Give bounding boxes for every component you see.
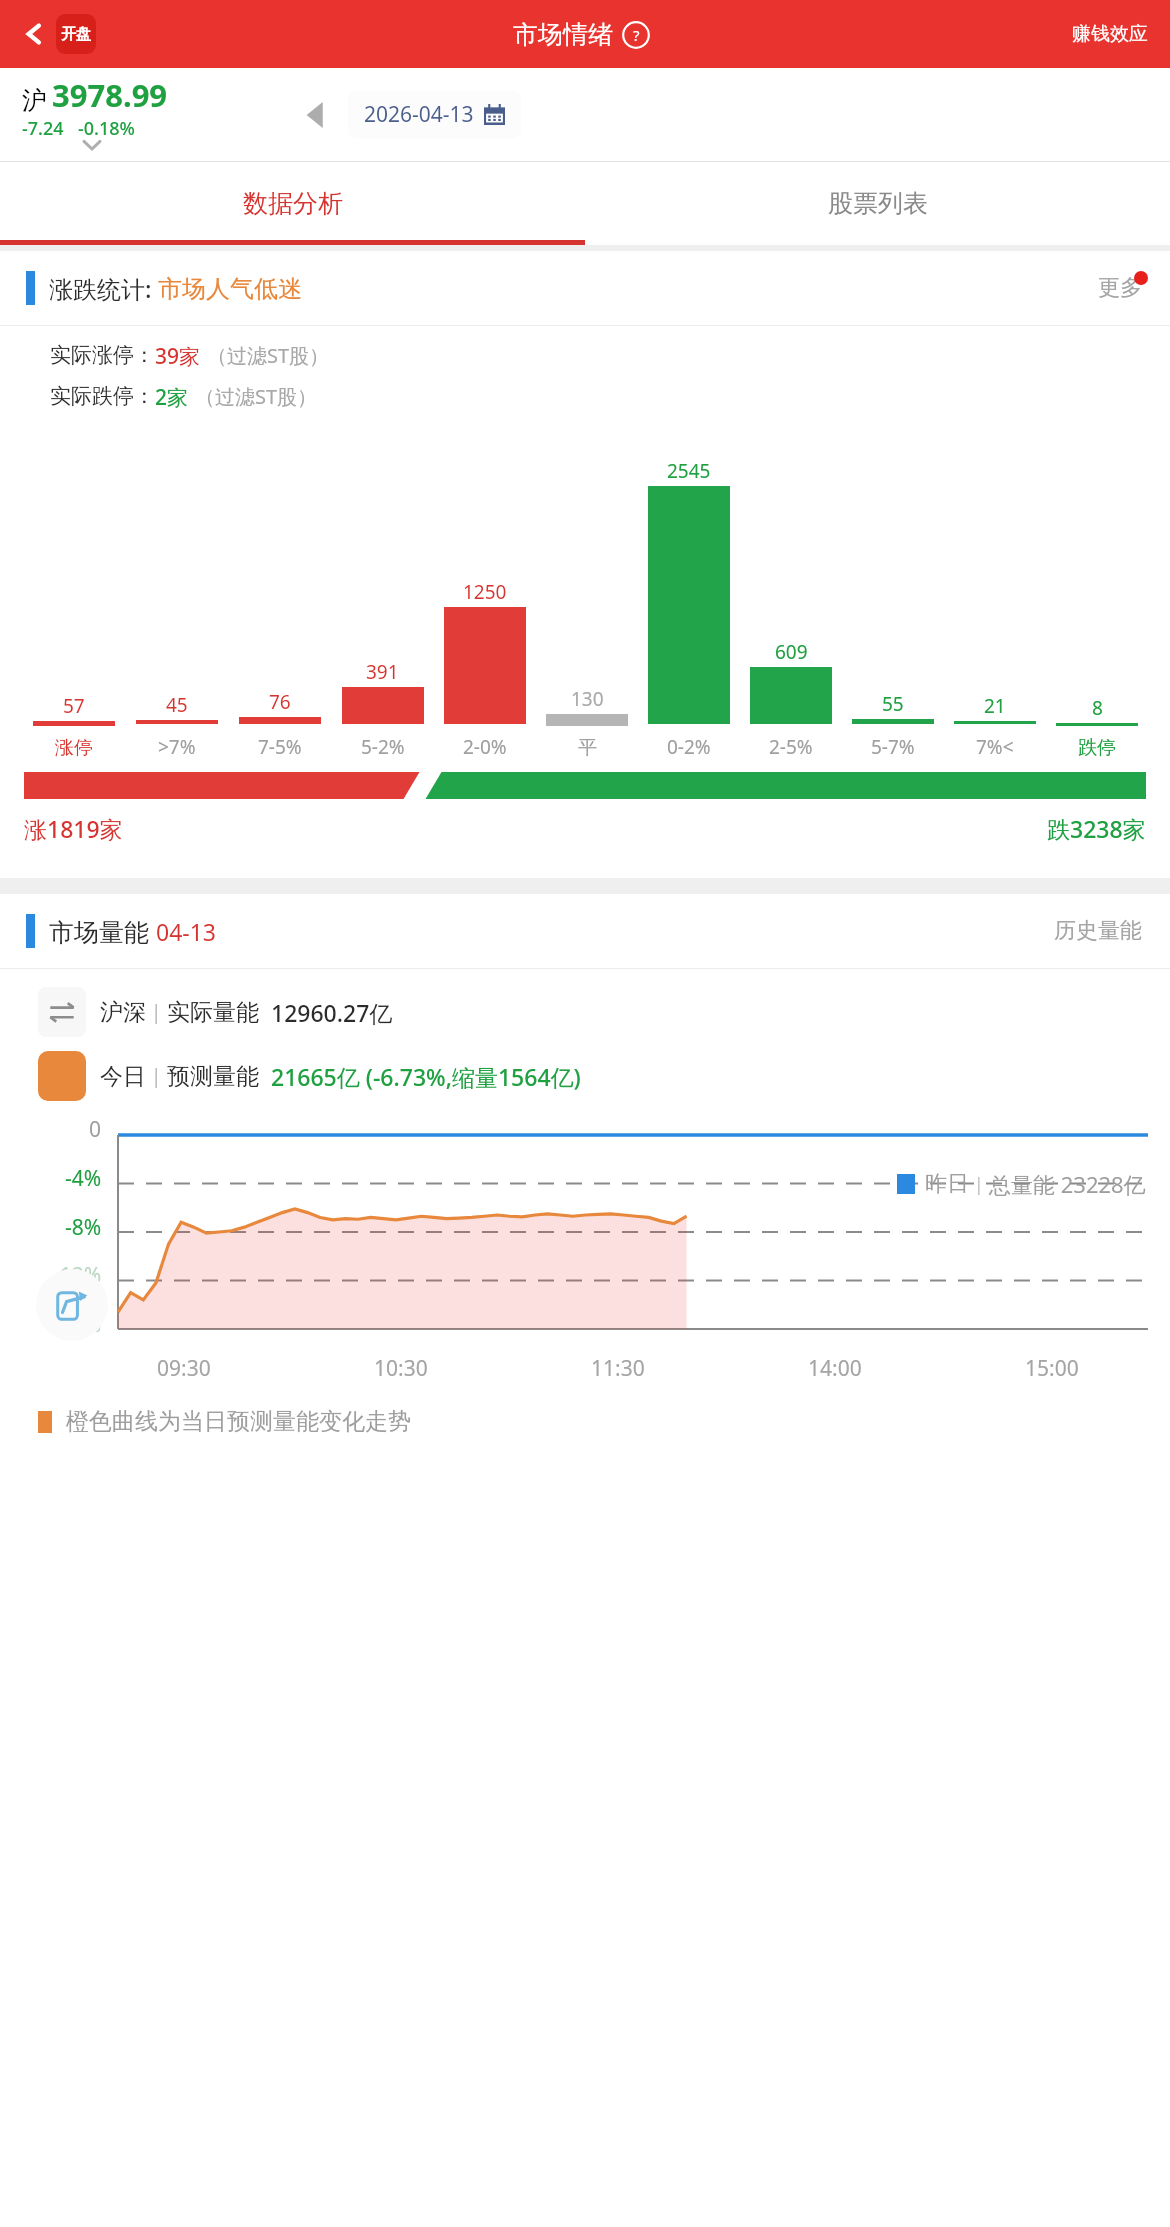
staticText: 更多 bbox=[1098, 274, 1142, 302]
staticText: 实际涨停： bbox=[50, 342, 155, 368]
staticText: >7% bbox=[158, 734, 196, 760]
button[interactable]: 2026-04-13 bbox=[348, 91, 521, 138]
staticText: 0-2% bbox=[667, 734, 711, 760]
staticText: 实际量能 bbox=[167, 998, 259, 1027]
staticText: 15:00 bbox=[1025, 1354, 1079, 1383]
staticText: 赚钱效应 bbox=[1072, 22, 1148, 46]
staticText: 5-2% bbox=[361, 734, 405, 760]
staticText: | bbox=[146, 1063, 167, 1089]
button[interactable]: Back bbox=[12, 12, 56, 56]
button[interactable]: 数据分析 bbox=[0, 162, 585, 245]
staticText: 130 bbox=[571, 686, 604, 712]
staticText: -4% bbox=[65, 1164, 102, 1193]
staticText: 市场情绪 bbox=[513, 19, 613, 50]
staticText: 沪 bbox=[22, 85, 47, 116]
button[interactable]: Expand bbox=[78, 131, 106, 159]
staticText: 609 bbox=[775, 639, 808, 665]
button[interactable]: Previous day bbox=[300, 98, 334, 132]
staticText: 3978.99 bbox=[52, 74, 168, 116]
button[interactable]: Share bbox=[36, 1269, 108, 1341]
staticText: 2家 bbox=[155, 383, 189, 412]
staticText: 橙色曲线为当日预测量能变化走势 bbox=[66, 1407, 411, 1436]
staticText: 55 bbox=[882, 691, 904, 717]
staticText: 5-7% bbox=[871, 734, 915, 760]
staticText: 57 bbox=[63, 693, 85, 719]
button[interactable]: 更多 bbox=[1094, 270, 1146, 306]
staticText: 市场量能 bbox=[49, 914, 156, 948]
staticText: 今日 bbox=[100, 1062, 146, 1091]
staticText: 11:30 bbox=[591, 1354, 645, 1383]
staticText: 涨1819家 bbox=[24, 813, 123, 844]
staticText: 1250 bbox=[463, 579, 507, 605]
staticText: （过滤ST股） bbox=[207, 342, 330, 369]
staticText: 开盘 bbox=[61, 25, 91, 44]
staticText: 7%< bbox=[976, 734, 1014, 760]
staticText: 平 bbox=[578, 736, 597, 760]
staticText: 总量能 23228亿 bbox=[989, 1169, 1146, 1199]
staticText: 涨停 bbox=[55, 736, 93, 760]
button[interactable]: 历史量能 bbox=[1050, 913, 1146, 949]
staticText: 预测量能 bbox=[167, 1062, 259, 1091]
staticText: 391 bbox=[366, 659, 399, 685]
staticText: -7.24 bbox=[22, 116, 64, 141]
staticText: 12960.27亿 bbox=[271, 997, 393, 1028]
staticText: 历史量能 bbox=[1054, 917, 1142, 945]
staticText: 沪深 bbox=[100, 998, 146, 1027]
staticText: （过滤ST股） bbox=[195, 383, 318, 410]
staticText: 实际跌停： bbox=[50, 383, 155, 409]
staticText: 股票列表 bbox=[828, 188, 928, 219]
staticText: | bbox=[969, 1172, 989, 1197]
staticText: 市场人气低迷 bbox=[158, 274, 302, 304]
staticText: -8% bbox=[65, 1213, 102, 1242]
staticText: 09:30 bbox=[157, 1354, 211, 1383]
staticText: 涨跌统计: bbox=[49, 272, 158, 305]
staticText: 10:30 bbox=[374, 1354, 428, 1383]
staticText: | bbox=[146, 999, 167, 1025]
staticText: 跌停 bbox=[1078, 736, 1116, 760]
staticText: 21665亿 (-6.73%,缩量1564亿) bbox=[271, 1061, 581, 1092]
staticText: 2-0% bbox=[463, 734, 507, 760]
staticText: 2545 bbox=[667, 458, 711, 484]
staticText: 0 bbox=[89, 1115, 102, 1144]
staticText: -12% bbox=[53, 1261, 102, 1290]
staticText: 39家 bbox=[155, 342, 201, 371]
staticText: 21 bbox=[984, 693, 1006, 719]
staticText: 45 bbox=[166, 692, 188, 718]
staticText: -16% bbox=[53, 1310, 102, 1339]
staticText: 数据分析 bbox=[243, 188, 343, 219]
staticText: 2026-04-13 bbox=[364, 100, 474, 129]
staticText: 8 bbox=[1092, 695, 1103, 721]
staticText: 7-5% bbox=[258, 734, 302, 760]
staticText: ? bbox=[633, 25, 640, 45]
staticText: -0.18% bbox=[78, 116, 135, 141]
button[interactable]: Help bbox=[621, 20, 651, 50]
staticText: 跌3238家 bbox=[1047, 813, 1146, 844]
button[interactable]: 赚钱效应 bbox=[1068, 18, 1152, 50]
staticText: 14:00 bbox=[808, 1354, 862, 1383]
button[interactable]: 开盘 bbox=[56, 14, 96, 54]
staticText: 04-13 bbox=[156, 916, 217, 947]
button[interactable]: 股票列表 bbox=[585, 162, 1170, 245]
staticText: 昨日 bbox=[925, 1170, 969, 1198]
staticText: 76 bbox=[269, 689, 291, 715]
staticText: 2-5% bbox=[769, 734, 813, 760]
